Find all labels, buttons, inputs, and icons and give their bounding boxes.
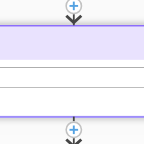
button[interactable] <box>0 0 144 144</box>
